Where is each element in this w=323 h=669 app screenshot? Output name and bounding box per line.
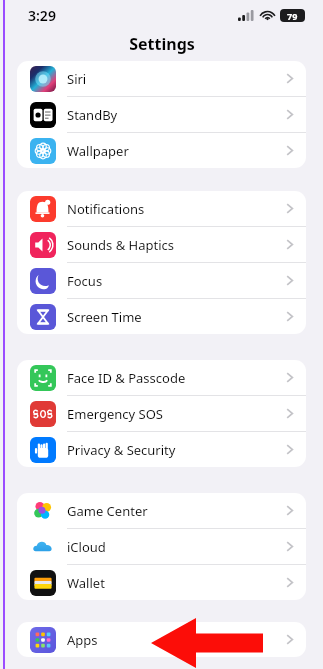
button[interactable]: Game Center xyxy=(17,493,306,528)
button[interactable]: Siri xyxy=(17,61,306,96)
button[interactable]: iCloud xyxy=(17,529,306,564)
staticText: 3:29 xyxy=(28,6,56,25)
staticText: Focus xyxy=(67,272,286,290)
staticText: Screen Time xyxy=(67,308,286,326)
staticText: iCloud xyxy=(67,538,286,556)
button[interactable]: Focus xyxy=(17,263,306,298)
staticText: 79 xyxy=(287,10,298,22)
staticText: Emergency SOS xyxy=(67,405,286,423)
button[interactable]: Sounds & Haptics xyxy=(17,227,306,262)
staticText: Wallpaper xyxy=(67,142,286,160)
staticText: Wallet xyxy=(67,574,286,592)
staticText: StandBy xyxy=(67,106,286,124)
button[interactable]: Apps xyxy=(17,622,306,657)
button[interactable]: Face ID & Passcode xyxy=(17,360,306,395)
button[interactable]: Emergency SOS xyxy=(17,396,306,431)
staticText: Settings xyxy=(129,33,195,55)
staticText: Privacy & Security xyxy=(67,441,286,459)
staticText: Siri xyxy=(67,70,286,88)
button[interactable]: Wallpaper xyxy=(17,133,306,168)
button[interactable]: Screen Time xyxy=(17,299,306,334)
staticText: Sounds & Haptics xyxy=(67,236,286,254)
staticText: Notifications xyxy=(67,200,286,218)
staticText: Face ID & Passcode xyxy=(67,369,286,387)
button[interactable]: Wallet xyxy=(17,565,306,600)
button[interactable]: Notifications xyxy=(17,191,306,226)
staticText: Game Center xyxy=(67,502,286,520)
button[interactable]: StandBy xyxy=(17,97,306,132)
button[interactable]: Privacy & Security xyxy=(17,432,306,467)
staticText: Apps xyxy=(67,631,286,649)
